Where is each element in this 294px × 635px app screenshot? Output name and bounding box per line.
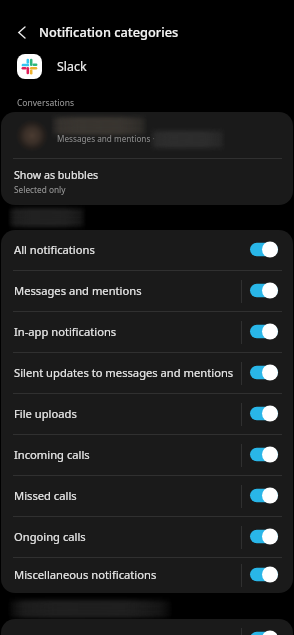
staticText: Show as bubbles <box>14 168 99 183</box>
button[interactable]: All notifications <box>1 230 293 270</box>
button[interactable]: In-app notifications <box>1 312 293 352</box>
staticText: Slack <box>57 58 87 75</box>
staticText: Conversations <box>17 97 74 109</box>
button[interactable]: Missed calls <box>1 476 293 516</box>
button[interactable]: Incoming calls <box>1 435 293 475</box>
button[interactable]: Slack <box>0 52 294 81</box>
staticText: Messages and mentions <box>14 283 235 298</box>
staticText: File uploads <box>14 406 235 421</box>
staticText: All notifications <box>14 242 235 257</box>
staticText: Ongoing calls <box>14 529 235 544</box>
button[interactable]: File uploads <box>1 394 293 434</box>
button[interactable]: Messages and mentions <box>1 271 293 311</box>
staticText: Miscellaneous notifications <box>14 567 235 582</box>
staticText: In-app notifications <box>14 324 235 339</box>
staticText: Missed calls <box>14 488 235 503</box>
staticText: Notification categories <box>39 23 179 40</box>
button[interactable]: Messages and mentions · <box>1 112 293 158</box>
staticText: Messages and mentions · <box>57 133 155 144</box>
staticText: Silent updates to messages and mentions <box>14 365 235 380</box>
button[interactable]: Silent updates to messages and mentions <box>1 353 293 393</box>
button[interactable]: Miscellaneous notifications <box>1 558 293 593</box>
staticText: Incoming calls <box>14 447 235 462</box>
staticText: Selected only <box>14 184 66 195</box>
button[interactable]: Back <box>7 18 35 46</box>
button[interactable]: Silent notifications <box>1 619 293 635</box>
button[interactable]: Ongoing calls <box>1 517 293 557</box>
button[interactable]: Show as bubbles <box>1 159 293 205</box>
